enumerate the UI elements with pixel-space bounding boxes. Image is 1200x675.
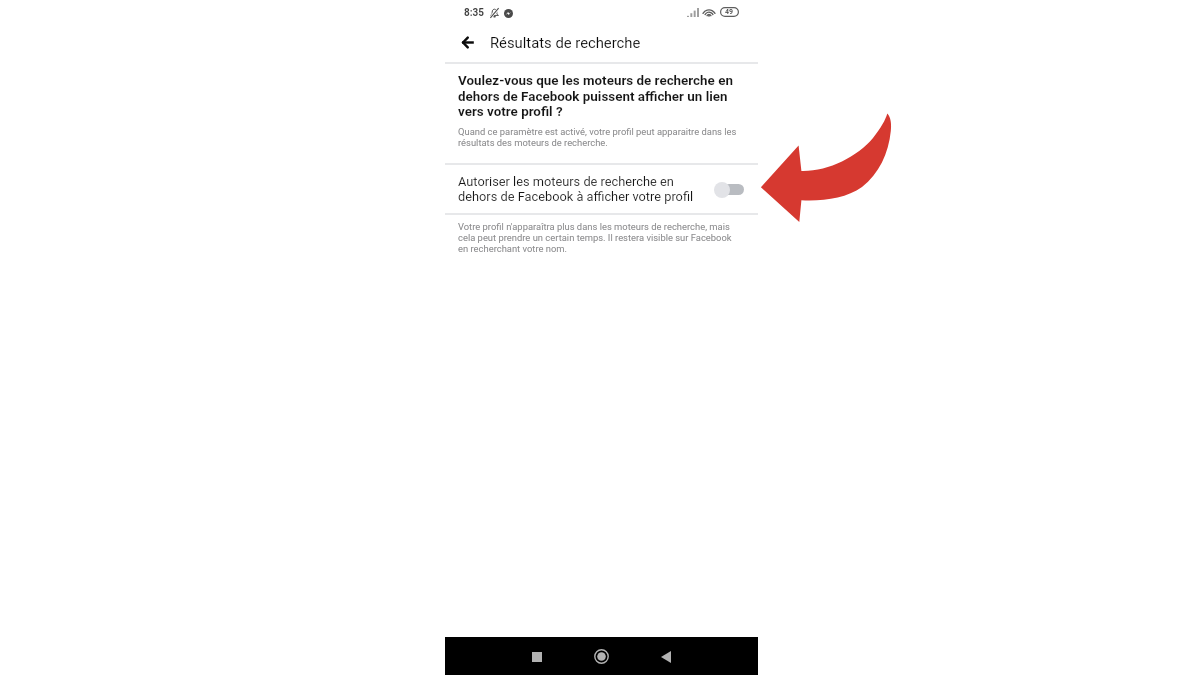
staticText: 49 xyxy=(725,8,734,16)
button[interactable]: Autoriser les moteurs de recherche en de… xyxy=(445,164,758,214)
button[interactable]: Home xyxy=(586,641,617,672)
staticText: 8:35 xyxy=(464,7,485,19)
staticText: Voulez-vous que les moteurs de recherche… xyxy=(458,73,744,119)
staticText: Quand ce paramètre est activé, votre pro… xyxy=(458,126,744,148)
staticText: Résultats de recherche xyxy=(490,34,641,51)
button[interactable]: Autoriser les moteurs de recherche, désa… xyxy=(714,181,744,198)
button[interactable]: Back xyxy=(650,641,681,672)
button[interactable]: Recent apps xyxy=(521,641,552,672)
staticText: Votre profil n'apparaîtra plus dans les … xyxy=(458,221,744,254)
staticText: Autoriser les moteurs de recherche en de… xyxy=(458,174,700,204)
button[interactable]: Back xyxy=(455,30,480,55)
